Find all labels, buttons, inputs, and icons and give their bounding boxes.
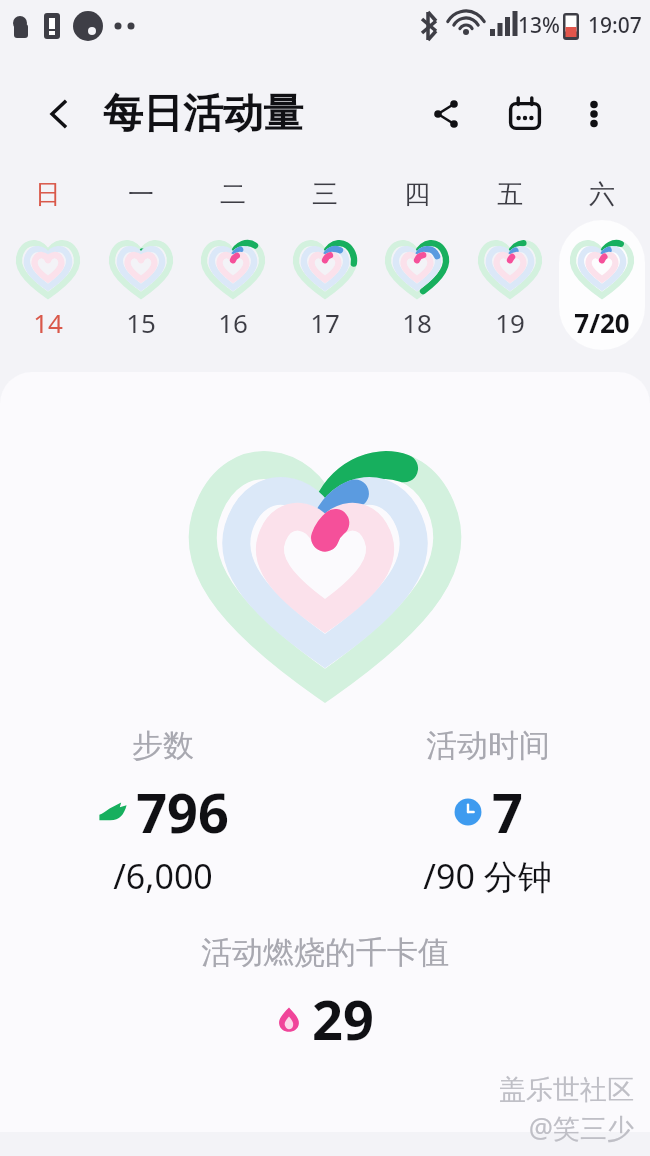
staticText: 15: [97, 305, 185, 340]
staticText: 一: [97, 178, 185, 211]
button[interactable]: 六: [558, 178, 646, 358]
staticText: 活动燃烧的千卡值: [201, 933, 449, 972]
button[interactable]: 步数: [0, 726, 325, 899]
button[interactable]: 三: [281, 178, 369, 358]
button[interactable]: 二: [189, 178, 277, 358]
button[interactable]: 活动时间: [325, 726, 650, 899]
button[interactable]: Calendar: [497, 86, 553, 142]
staticText: 六: [558, 178, 646, 211]
button[interactable]: 活动燃烧的千卡值: [0, 933, 650, 1056]
staticText: 16: [189, 305, 277, 340]
staticText: @笑三少: [528, 1109, 634, 1146]
staticText: 步数: [132, 726, 194, 765]
staticText: 二: [189, 178, 277, 211]
staticText: 7/20: [558, 305, 646, 340]
staticText: 7: [492, 775, 523, 849]
staticText: /90 分钟: [423, 853, 552, 899]
staticText: 796: [136, 775, 229, 849]
staticText: 三: [281, 178, 369, 211]
button[interactable]: Share: [418, 86, 474, 142]
staticText: 14: [4, 305, 92, 340]
button[interactable]: Back: [32, 86, 88, 142]
staticText: 四: [373, 178, 461, 211]
button[interactable]: 四: [373, 178, 461, 358]
staticText: 盖乐世社区: [499, 1073, 634, 1107]
button[interactable]: 五: [466, 178, 554, 358]
staticText: 活动时间: [426, 726, 550, 765]
staticText: 29: [312, 982, 374, 1056]
staticText: 每日活动量: [103, 88, 303, 138]
button[interactable]: More options: [566, 86, 622, 142]
staticText: 五: [466, 178, 554, 211]
staticText: 18: [373, 305, 461, 340]
staticText: /6,000: [113, 853, 213, 899]
staticText: 19:07: [588, 11, 642, 40]
button[interactable]: 日: [4, 178, 92, 358]
button[interactable]: 一: [97, 178, 185, 358]
staticText: 19: [466, 305, 554, 340]
staticText: 日: [4, 178, 92, 211]
staticText: 17: [281, 305, 369, 340]
staticText: 13%: [518, 11, 560, 40]
